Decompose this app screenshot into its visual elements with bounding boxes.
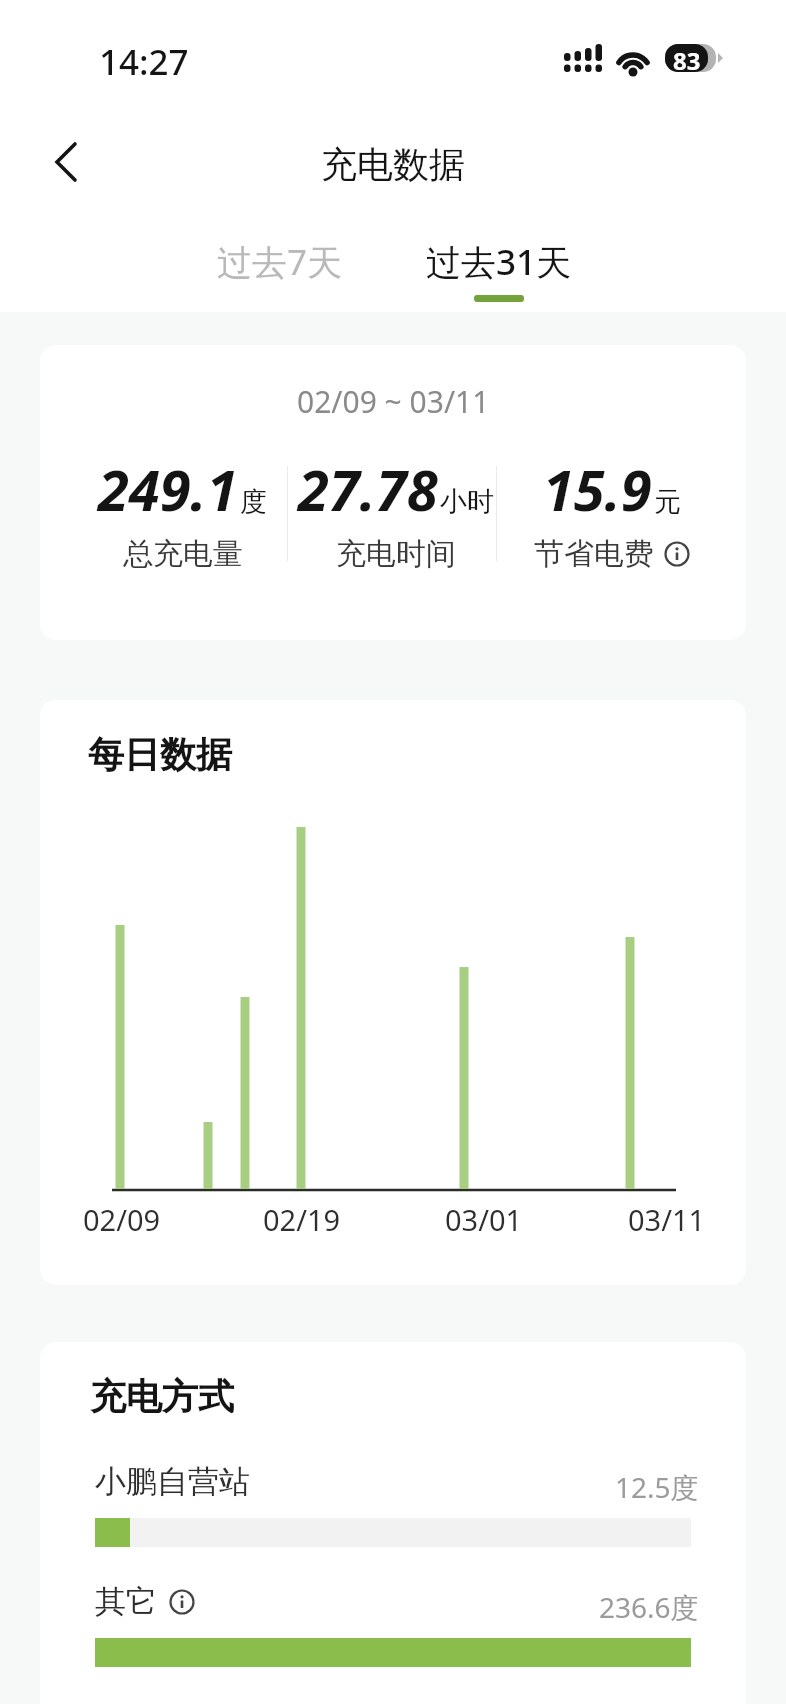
button[interactable]: 过去7天 xyxy=(200,232,360,292)
staticText: 236.6度 xyxy=(599,1588,699,1626)
staticText: 充电时间 xyxy=(336,535,456,573)
staticText: 总充电量 xyxy=(123,535,243,573)
staticText: 02/19 xyxy=(263,1200,341,1239)
staticText: 过去7天 xyxy=(217,238,343,286)
staticText: 小时 xyxy=(440,485,494,519)
staticText: 02/09 xyxy=(83,1200,161,1239)
staticText: 过去31天 xyxy=(426,238,572,286)
staticText: 元 xyxy=(654,485,681,519)
staticText: 249.1 xyxy=(98,451,238,527)
staticText: 度 xyxy=(240,485,267,519)
staticText: 27.78 xyxy=(298,451,438,527)
button[interactable] xyxy=(664,541,690,567)
button[interactable]: 过去31天 xyxy=(414,232,584,292)
staticText: 15.9 xyxy=(543,451,652,527)
staticText: 充电数据 xyxy=(321,142,465,187)
staticText: 其它 xyxy=(95,1582,157,1621)
button[interactable] xyxy=(40,136,92,188)
staticText: 03/01 xyxy=(445,1200,523,1239)
staticText: 83 xyxy=(673,44,701,72)
staticText: 12.5度 xyxy=(615,1468,699,1506)
staticText: 02/09 ~ 03/11 xyxy=(297,381,490,422)
staticText: 小鹏自营站 xyxy=(95,1462,250,1501)
staticText: 充电方式 xyxy=(90,1374,234,1419)
staticText: 每日数据 xyxy=(88,732,232,777)
staticText: 14:27 xyxy=(99,38,189,86)
button[interactable] xyxy=(169,1589,195,1615)
staticText: 节省电费 xyxy=(534,535,654,573)
staticText: 03/11 xyxy=(628,1200,706,1239)
